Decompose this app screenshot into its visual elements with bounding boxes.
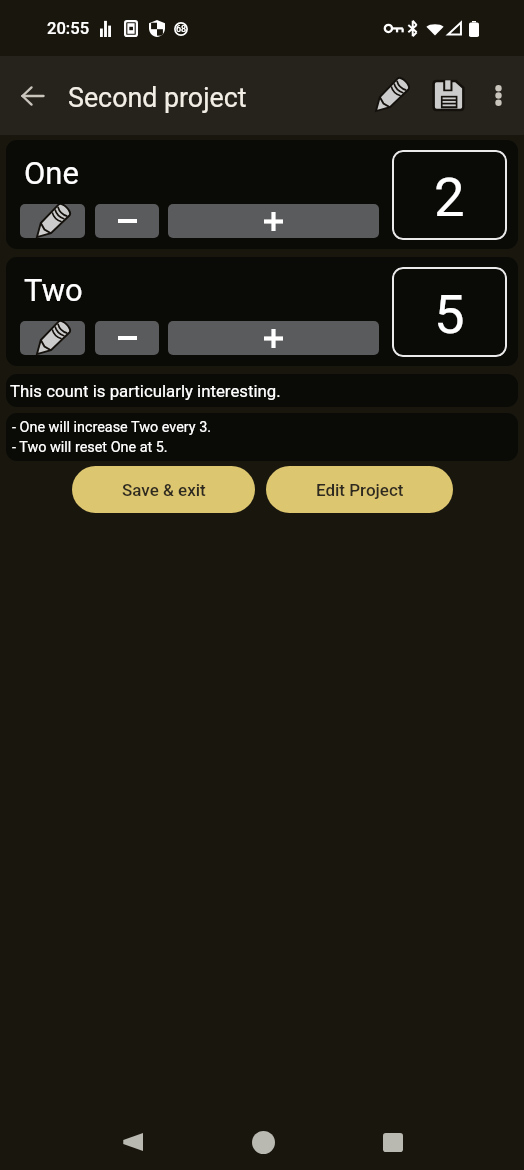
button[interactable]: Back bbox=[67, 1100, 198, 1170]
staticText: 20:55 bbox=[47, 19, 90, 38]
staticText: - Two will reset One at 5. bbox=[12, 439, 168, 456]
button[interactable]: Rename counter bbox=[20, 204, 85, 238]
staticText: This count is particularly interesting. bbox=[10, 381, 281, 401]
button[interactable]: Edit bbox=[358, 56, 425, 135]
button[interactable]: Recent apps bbox=[329, 1100, 457, 1170]
button[interactable]: 5 bbox=[392, 267, 507, 357]
button[interactable]: More options bbox=[472, 56, 524, 135]
staticText: - One will increase Two every 3. bbox=[12, 419, 212, 436]
button[interactable]: Save bbox=[425, 56, 472, 135]
button[interactable]: Edit Project bbox=[266, 466, 453, 513]
button[interactable]: Decrement bbox=[95, 204, 159, 238]
button[interactable]: Navigate up bbox=[10, 73, 56, 119]
button[interactable]: One bbox=[6, 140, 518, 249]
button[interactable]: Increment bbox=[168, 321, 379, 355]
staticText: Two bbox=[24, 272, 83, 308]
staticText: One bbox=[24, 155, 79, 191]
button[interactable]: Two bbox=[6, 257, 518, 366]
button[interactable]: Save & exit bbox=[72, 466, 255, 513]
staticText: Save & exit bbox=[122, 480, 206, 500]
staticText: 5 bbox=[434, 282, 465, 346]
button[interactable]: Rename counter bbox=[20, 321, 85, 355]
button[interactable]: Decrement bbox=[95, 321, 159, 355]
staticText: Second project bbox=[68, 82, 247, 113]
staticText: Edit Project bbox=[316, 480, 404, 500]
button[interactable]: This count is particularly interesting. bbox=[6, 374, 518, 407]
staticText: 2 bbox=[434, 165, 465, 229]
button[interactable]: - One will increase Two every 3. bbox=[6, 413, 518, 461]
button[interactable]: 2 bbox=[392, 150, 507, 240]
staticText: 68 bbox=[176, 24, 187, 35]
button[interactable]: Home bbox=[198, 1100, 329, 1170]
button[interactable]: Increment bbox=[168, 204, 379, 238]
